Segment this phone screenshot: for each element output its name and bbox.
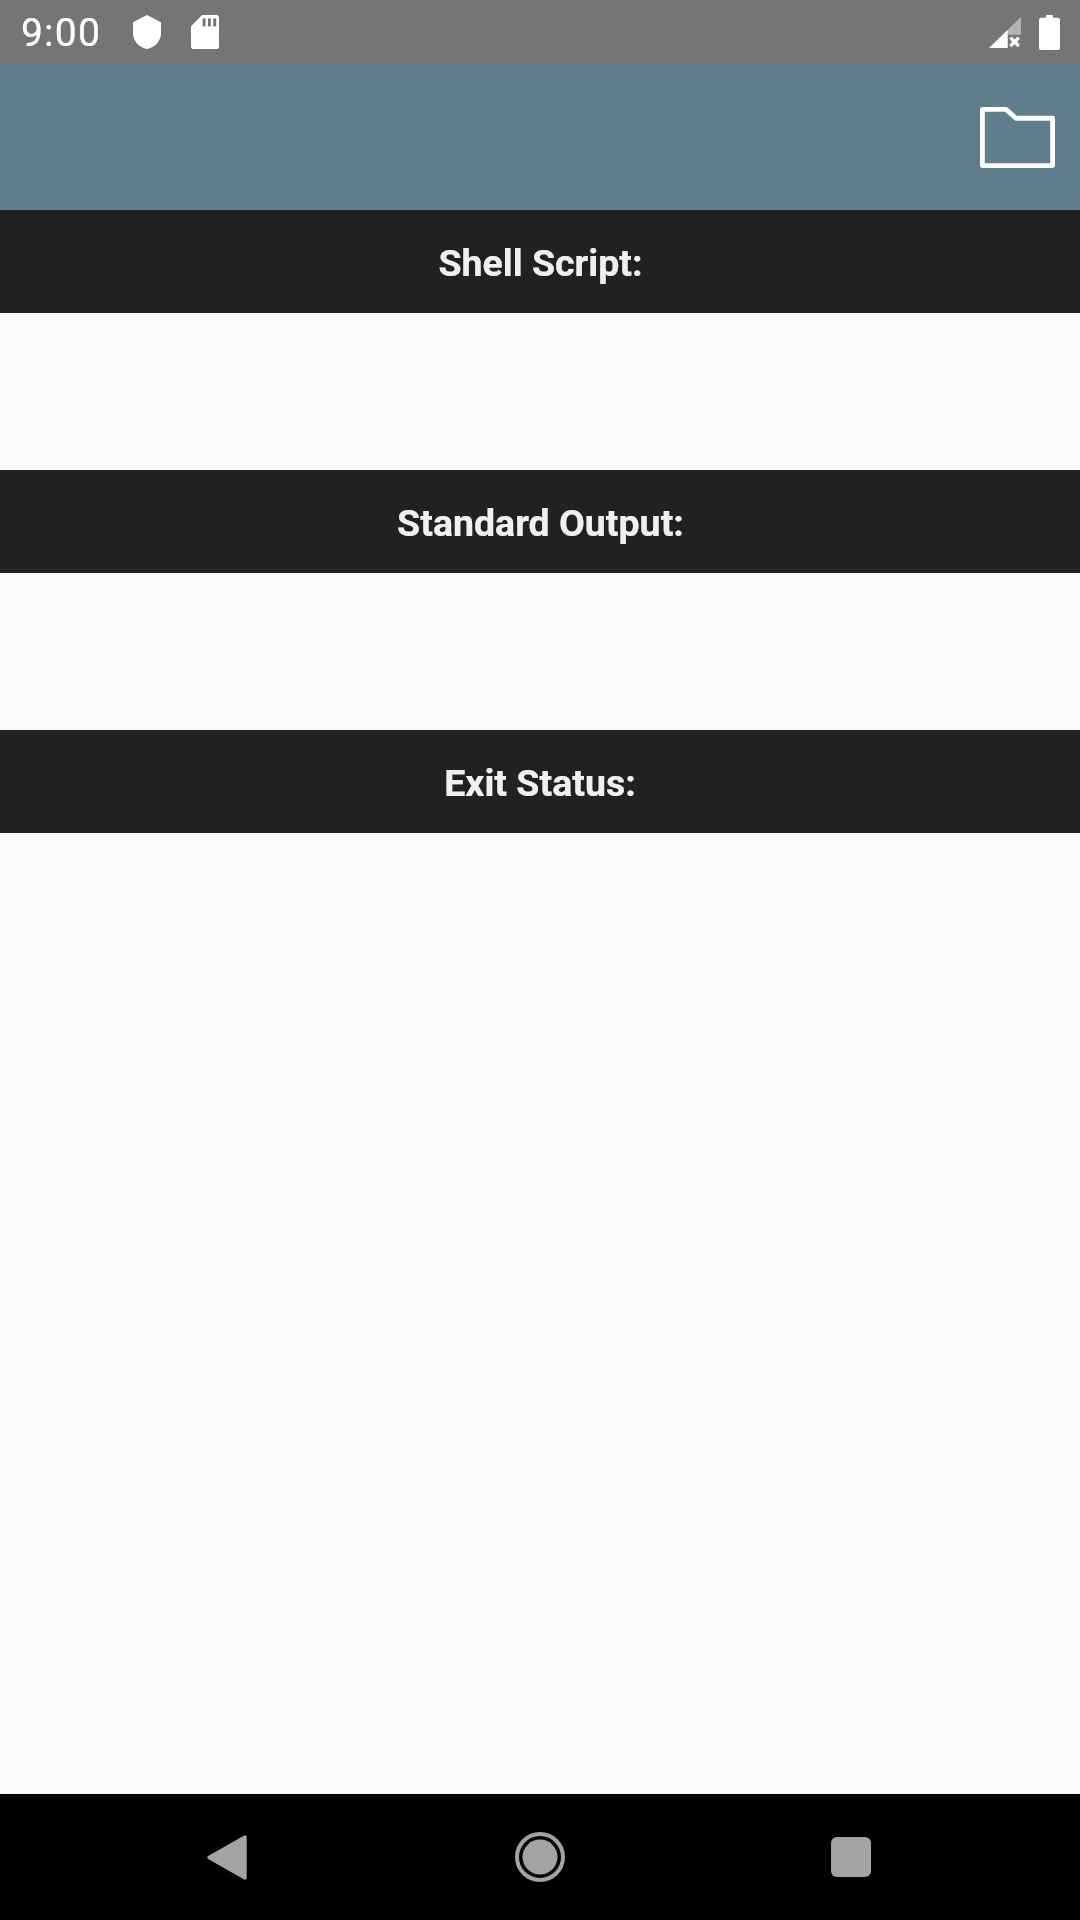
- button[interactable]: Home: [485, 1802, 595, 1912]
- button[interactable]: Exit Status:: [0, 730, 1080, 833]
- button[interactable]: Shell Script:: [0, 210, 1080, 313]
- staticText: Shell Script:: [438, 241, 643, 285]
- staticText: Standard Output:: [397, 501, 684, 545]
- button[interactable]: Standard Output:: [0, 470, 1080, 573]
- button[interactable]: Recent apps: [796, 1802, 906, 1912]
- staticText: Exit Status:: [444, 761, 636, 805]
- button[interactable]: Open file: [957, 77, 1077, 197]
- button[interactable]: Back: [172, 1802, 282, 1912]
- staticText: 9:00: [21, 10, 102, 56]
